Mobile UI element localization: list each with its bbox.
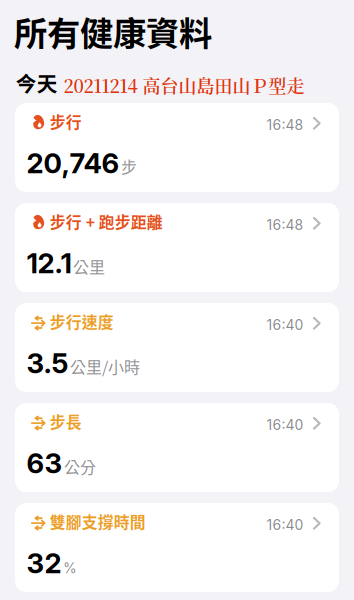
- staticText: 公分: [64, 455, 96, 478]
- staticText: 步行速度: [50, 310, 114, 333]
- staticText: 16:40: [266, 516, 303, 533]
- staticText: 16:40: [266, 316, 303, 333]
- staticText: 步行 + 跑步距離: [50, 210, 163, 233]
- staticText: 63: [26, 447, 62, 480]
- staticText: 20211214 高台山島田山Ｐ型走: [63, 72, 304, 98]
- staticText: 32: [26, 547, 61, 580]
- staticText: 16:40: [266, 416, 303, 433]
- staticText: 12.1: [26, 247, 71, 280]
- staticText: 步: [121, 155, 137, 178]
- staticText: 步長: [50, 410, 82, 433]
- staticText: 公里: [73, 255, 105, 278]
- staticText: 3.5: [26, 347, 68, 380]
- staticText: 20,746: [26, 147, 119, 180]
- staticText: 16:48: [266, 216, 303, 233]
- staticText: 16:48: [266, 116, 303, 133]
- staticText: 今天: [16, 68, 58, 98]
- staticText: 步行: [50, 110, 82, 133]
- staticText: 公里/小時: [70, 355, 140, 378]
- staticText: 所有健康資料: [14, 7, 212, 55]
- staticText: 雙腳支撐時間: [50, 510, 146, 533]
- staticText: %: [63, 560, 77, 577]
